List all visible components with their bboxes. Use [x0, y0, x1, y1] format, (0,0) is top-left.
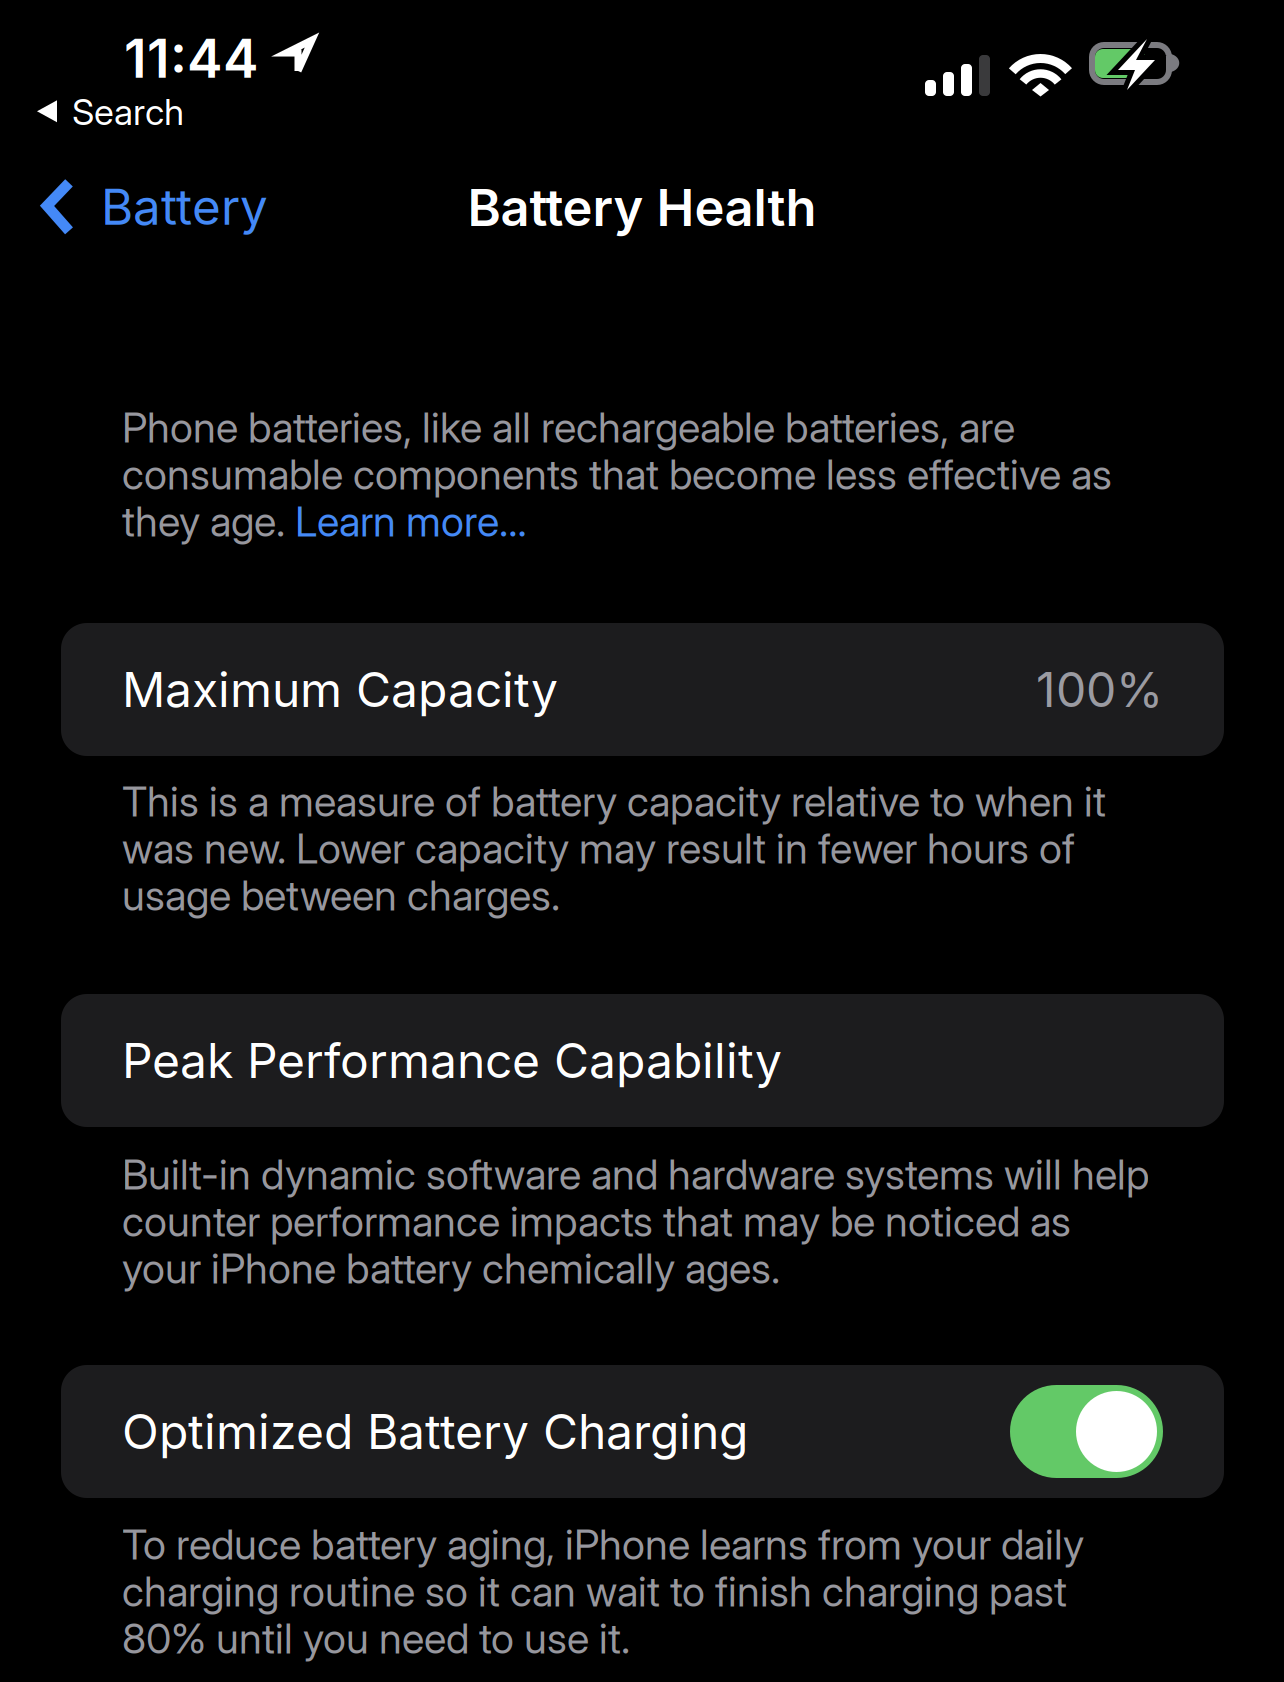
- staticText: was new. Lower capacity may result in fe…: [122, 823, 1075, 873]
- staticText: 80% until you need to use it.: [122, 1613, 630, 1663]
- staticText: Battery Health: [467, 177, 816, 238]
- staticText: This is a measure of battery capacity re…: [122, 776, 1106, 826]
- staticText: they age.: [122, 496, 295, 546]
- staticText: 11:44: [124, 26, 259, 90]
- button[interactable]: Peak Performance Capability: [61, 994, 1224, 1127]
- button[interactable]: Search: [25, 82, 196, 142]
- staticText: 100%: [1036, 660, 1163, 719]
- staticText: Search: [72, 90, 184, 134]
- staticText: your iPhone battery chemically ages.: [122, 1243, 780, 1293]
- staticText: usage between charges.: [122, 870, 560, 920]
- button[interactable]: Learn more…: [295, 496, 527, 546]
- staticText: Maximum Capacity: [122, 660, 558, 719]
- staticText: Built-in dynamic software and hardware s…: [122, 1149, 1149, 1199]
- button[interactable]: Optimized Battery Charging, on: [1010, 1385, 1163, 1478]
- button[interactable]: Battery: [26, 165, 284, 249]
- staticText: counter performance impacts that may be …: [122, 1196, 1071, 1246]
- staticText: consumable components that become less e…: [122, 449, 1112, 499]
- staticText: Phone batteries, like all rechargeable b…: [122, 402, 1015, 452]
- button[interactable]: Maximum Capacity: [61, 623, 1224, 756]
- staticText: To reduce battery aging, iPhone learns f…: [122, 1519, 1084, 1569]
- staticText: Battery: [101, 177, 268, 237]
- staticText: Peak Performance Capability: [122, 1031, 782, 1090]
- staticText: Optimized Battery Charging: [122, 1402, 748, 1461]
- staticText: charging routine so it can wait to finis…: [122, 1566, 1067, 1616]
- staticText: Learn more…: [295, 496, 527, 546]
